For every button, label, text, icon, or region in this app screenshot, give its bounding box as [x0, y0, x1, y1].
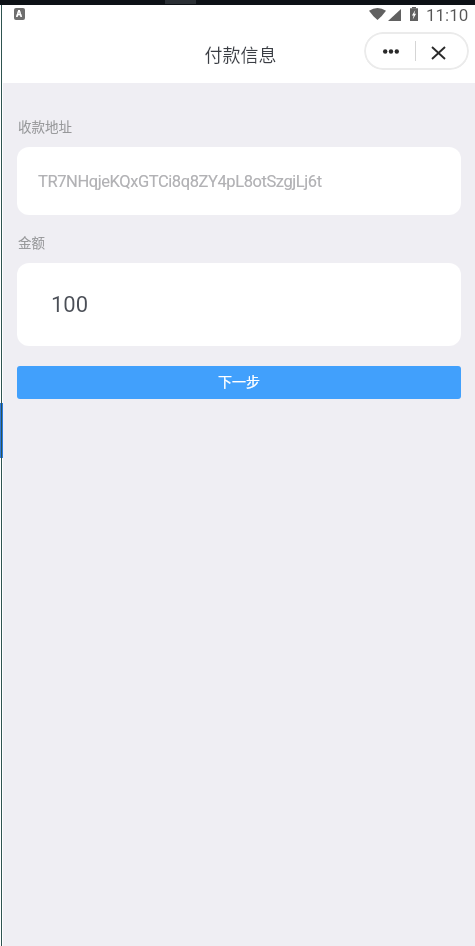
staticText: 11:10 [426, 5, 469, 25]
button[interactable]: 100 [17, 263, 461, 346]
button[interactable]: 下一步 [17, 366, 461, 399]
staticText: 金额 [18, 232, 45, 252]
button[interactable]: Close [416, 32, 469, 70]
staticText: 收款地址 [18, 116, 72, 136]
staticText: 付款信息 [3, 41, 475, 67]
staticText: A [16, 9, 23, 20]
staticText: 下一步 [218, 371, 260, 391]
staticText: TR7NHqjeKQxGTCi8q8ZY4pL8otSzgjLj6t [38, 172, 322, 191]
button[interactable]: TR7NHqjeKQxGTCi8q8ZY4pL8otSzgjLj6t [17, 147, 461, 215]
button[interactable]: More options [364, 32, 415, 70]
staticText: 100 [51, 292, 89, 318]
